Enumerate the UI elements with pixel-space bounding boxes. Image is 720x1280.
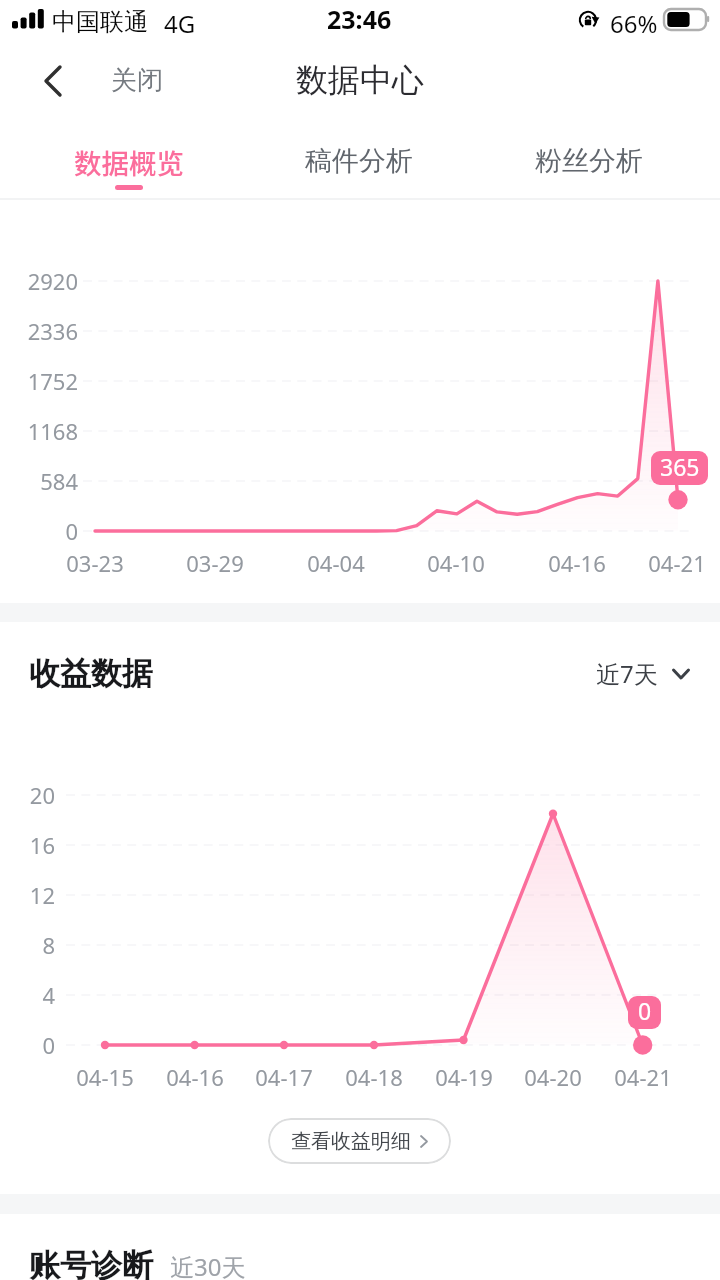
other: Signal strength [12,8,46,30]
staticText: 04-04 [286,548,386,578]
staticText: 近30天 [170,1250,246,1280]
staticText: 04-19 [414,1062,514,1092]
staticText: 04-15 [55,1062,155,1092]
staticText: 12 [0,880,55,910]
staticText: 账号诊断 [29,1246,153,1280]
staticText: 中国联通 [52,7,148,37]
staticText: 584 [0,466,78,496]
staticText: 04-16 [145,1062,245,1092]
staticText: 0 [638,996,652,1026]
staticText: 收益数据 [29,654,153,693]
staticText: 04-21 [593,1062,693,1092]
button[interactable]: 数据概览 [14,120,244,199]
button[interactable]: 查看收益明细 [268,1118,451,1164]
staticText: 365 [660,451,700,482]
staticText: 0 [0,516,78,546]
button[interactable]: 近7天 [576,649,720,702]
staticText: 04-21 [627,548,720,578]
staticText: 20 [0,780,55,810]
staticText: 66% [610,7,658,40]
staticText: 1752 [0,366,78,396]
staticText: 2336 [0,316,78,346]
button[interactable]: 粉丝分析 [474,120,704,199]
other: Rotation lock [578,9,600,31]
staticText: 近7天 [596,657,658,690]
staticText: 关闭 [111,64,163,97]
staticText: 查看收益明细 [291,1129,411,1154]
staticText: 8 [0,930,55,960]
staticText: 04-20 [503,1062,603,1092]
staticText: 数据概览 [74,142,184,182]
staticText: 4 [0,980,55,1010]
staticText: 04-18 [324,1062,424,1092]
staticText: 16 [0,830,55,860]
staticText: 稿件分析 [305,144,413,178]
staticText: 数据中心 [296,60,424,100]
other: Back [44,65,62,97]
staticText: 4G [164,7,196,40]
staticText: 0 [0,1030,55,1060]
staticText: 04-17 [234,1062,334,1092]
staticText: 2920 [0,266,78,296]
staticText: 03-23 [45,548,145,578]
button[interactable]: 稿件分析 [244,120,474,199]
staticText: 23:46 [327,2,392,36]
staticText: 04-16 [527,548,627,578]
staticText: 粉丝分析 [535,144,643,178]
staticText: 04-10 [406,548,506,578]
staticText: 1168 [0,416,78,446]
button[interactable]: Back [0,56,187,109]
staticText: 03-29 [165,548,265,578]
